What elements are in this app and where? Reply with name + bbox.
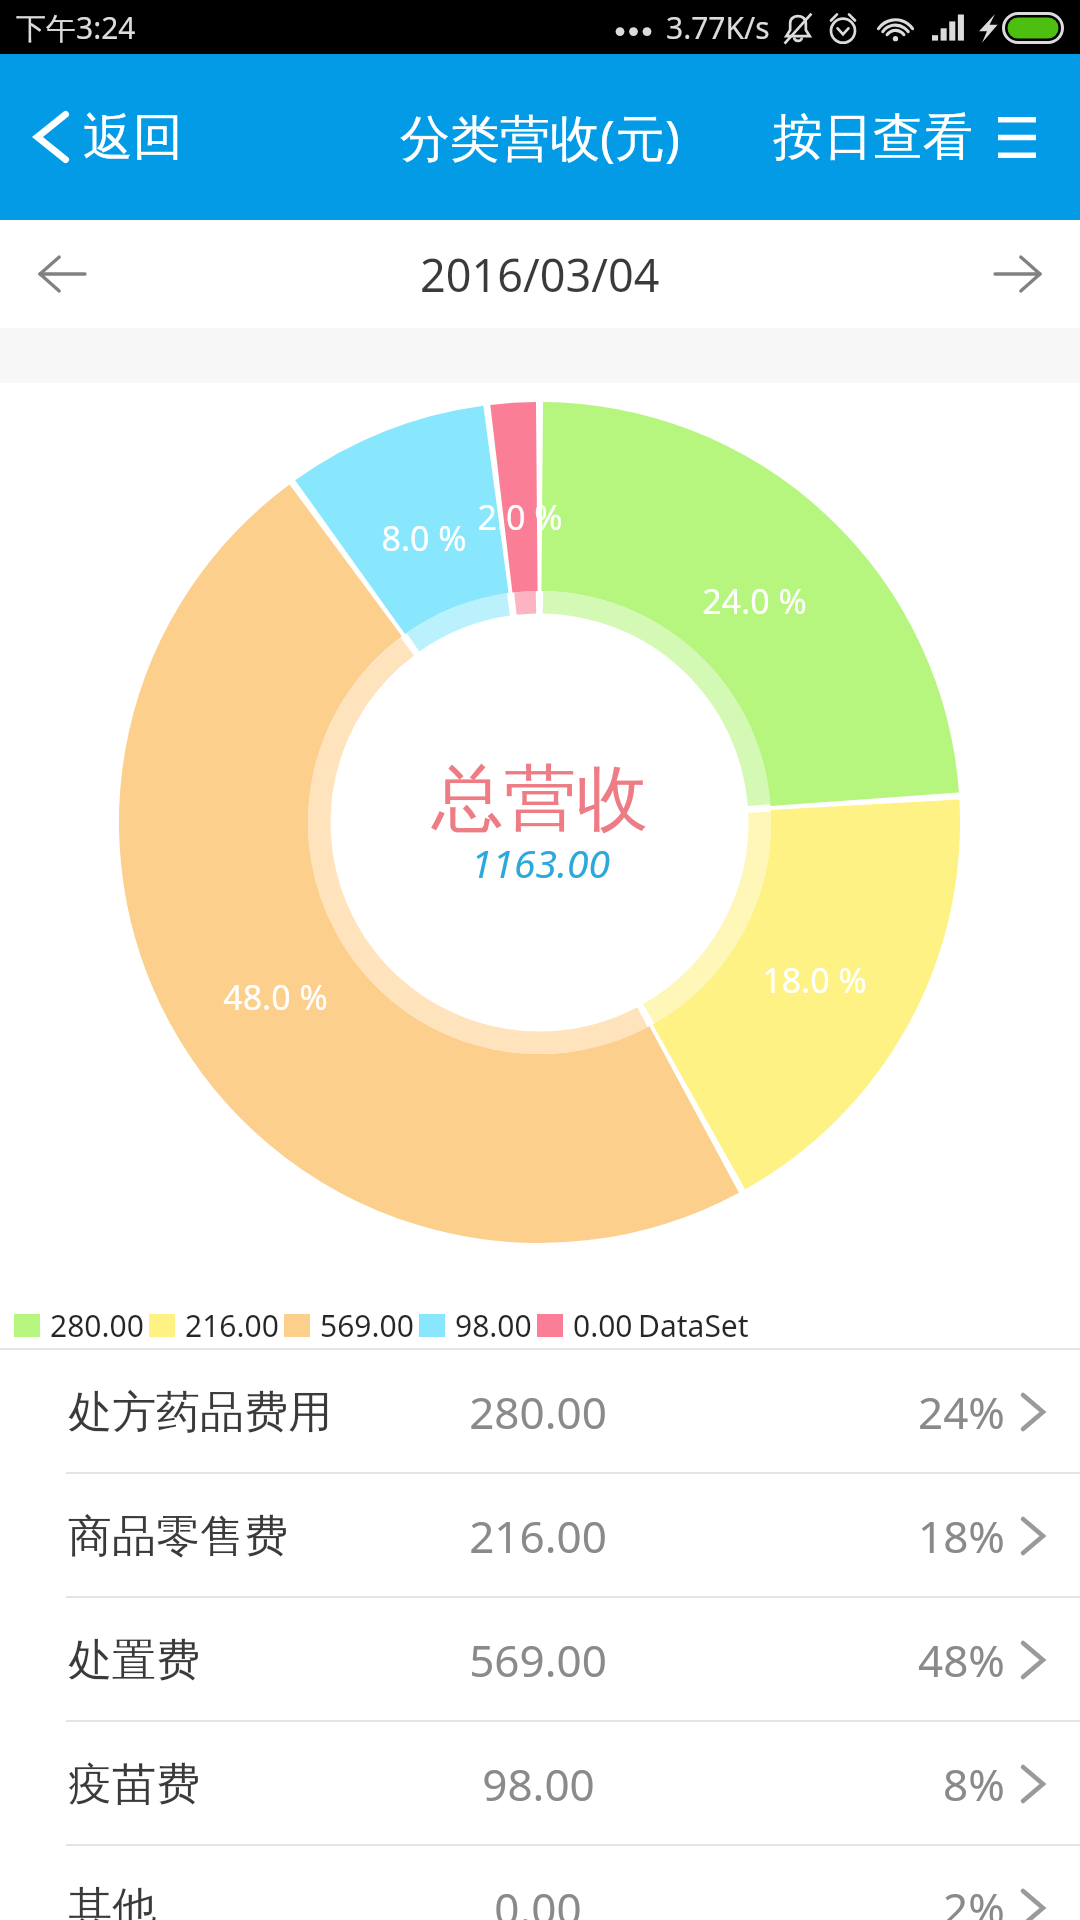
staticText: 98.00 xyxy=(455,1305,532,1346)
staticText: 处置费 xyxy=(68,1633,200,1688)
staticText: 按日查看 xyxy=(773,106,973,169)
staticText: 8% xyxy=(943,1754,1005,1814)
staticText: 1163.00 xyxy=(471,836,610,889)
staticText: 280.00 xyxy=(469,1382,607,1442)
staticText: 0.00 xyxy=(494,1878,582,1920)
staticText: 0.00 xyxy=(573,1305,633,1346)
staticText: 48.0 % xyxy=(223,974,328,1020)
button[interactable]: 商品零售费 xyxy=(0,1474,1080,1598)
staticText: 18% xyxy=(918,1506,1005,1566)
staticText: 280.00 xyxy=(50,1305,144,1346)
staticText: DataSet xyxy=(638,1305,749,1346)
staticText: 216.00 xyxy=(185,1305,279,1346)
button[interactable]: 其他 xyxy=(0,1846,1080,1920)
button[interactable]: 处置费 xyxy=(0,1598,1080,1722)
staticText: 其他 xyxy=(68,1881,156,1920)
staticText: 2016/03/04 xyxy=(420,244,660,305)
staticText: 18.0 % xyxy=(762,957,867,1003)
staticText: 48% xyxy=(918,1630,1005,1690)
staticText: 3.77K/s xyxy=(666,7,770,48)
button[interactable]: Next day xyxy=(956,220,1080,328)
staticText: 216.00 xyxy=(469,1506,607,1566)
staticText: 569.00 xyxy=(469,1630,607,1690)
staticText: 98.00 xyxy=(482,1754,595,1814)
staticText: 24% xyxy=(918,1382,1005,1442)
staticText: 商品零售费 xyxy=(68,1509,288,1564)
button[interactable]: 疫苗费 xyxy=(0,1722,1080,1846)
staticText: 24.0 % xyxy=(702,578,807,624)
button[interactable]: Previous day xyxy=(0,220,124,328)
staticText: 2% xyxy=(943,1878,1005,1920)
button[interactable]: View by day, open menu xyxy=(773,54,1080,220)
staticText: 返回 xyxy=(83,106,183,169)
button[interactable]: 处方药品费用 xyxy=(0,1350,1080,1474)
staticText: 下午3:24 xyxy=(16,7,136,48)
staticText: 分类营收(元) xyxy=(400,103,680,171)
staticText: 8.0 % xyxy=(381,515,467,561)
staticText: 569.00 xyxy=(320,1305,414,1346)
button[interactable]: Back xyxy=(0,54,207,220)
staticText: 2.0 % xyxy=(477,494,563,540)
staticText: 总营收 xyxy=(432,754,648,845)
staticText: 疫苗费 xyxy=(68,1757,200,1812)
staticText: 处方药品费用 xyxy=(68,1385,332,1440)
